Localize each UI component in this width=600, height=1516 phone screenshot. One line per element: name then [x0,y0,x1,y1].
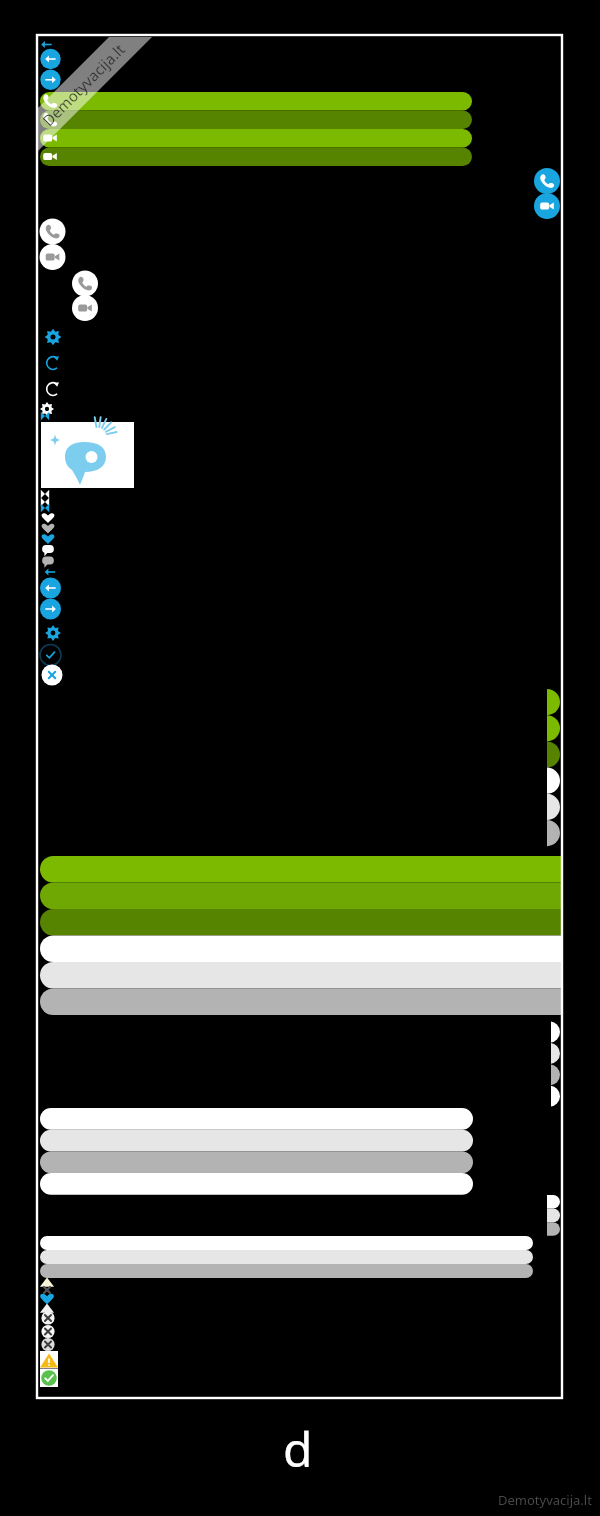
button[interactable]: Refresh [42,379,62,399]
button[interactable]: Refresh [42,353,62,373]
button[interactable]: Like [40,510,57,526]
button[interactable]: Call [40,219,66,245]
button[interactable]: Call [534,168,560,194]
button[interactable]: Video call [40,129,472,148]
button[interactable]: Video call [534,193,560,219]
button[interactable]: Back [40,578,61,599]
staticText: Demotyvacija.lt [498,1491,592,1509]
button[interactable]: Open chat [41,421,134,489]
button[interactable]: Video call [40,148,472,167]
button[interactable]: Confirm [40,645,61,666]
button[interactable]: Like [40,521,57,537]
button[interactable]: Comment [40,553,57,570]
button[interactable]: Forward [40,69,62,90]
button[interactable]: Settings [38,401,55,418]
button[interactable]: Back [40,49,62,70]
button[interactable]: Settings [41,326,63,348]
button[interactable]: Video call [40,244,66,270]
button[interactable]: Dismiss [42,665,63,686]
button[interactable]: Call [72,271,98,297]
button[interactable]: Forward [40,599,61,620]
staticText: d [283,1416,313,1481]
button[interactable]: Settings [42,623,62,643]
button[interactable]: Call [40,92,472,111]
button[interactable]: Video call [72,295,98,321]
button[interactable]: Call [40,111,472,130]
staticText: Demotyvacija.lt [38,39,129,130]
button[interactable]: Comment [40,542,57,559]
button[interactable]: Like [40,531,57,547]
